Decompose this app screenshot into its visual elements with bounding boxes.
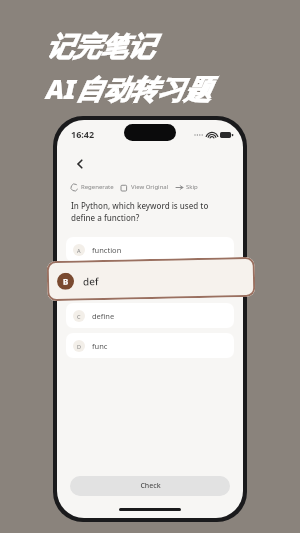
button[interactable]: View Original (121, 183, 169, 191)
staticText: B (63, 276, 69, 287)
staticText: func (92, 341, 108, 351)
staticText: C (77, 313, 81, 320)
button[interactable]: B (47, 257, 255, 301)
staticText: 16:42 (71, 128, 95, 140)
button[interactable]: D (66, 333, 234, 358)
staticText: A (77, 247, 81, 254)
button[interactable]: Skip (176, 183, 198, 191)
button[interactable]: Check (70, 476, 230, 496)
button[interactable]: Back (68, 152, 92, 176)
staticText: View Original (131, 183, 169, 191)
staticText: 记完笔记 (46, 30, 154, 64)
staticText: def (83, 274, 99, 288)
staticText: Skip (186, 183, 198, 191)
staticText: In Python, which keyword is used to defi… (71, 200, 231, 224)
staticText: function (92, 245, 122, 255)
staticText: AI自动转习题 (46, 70, 211, 107)
button[interactable]: A (66, 237, 234, 262)
staticText: D (77, 343, 82, 350)
button[interactable]: C (66, 303, 234, 328)
staticText: Check (140, 481, 161, 491)
staticText: Regenerate (81, 183, 114, 191)
staticText: define (92, 311, 115, 321)
button[interactable]: Regenerate (71, 183, 114, 191)
